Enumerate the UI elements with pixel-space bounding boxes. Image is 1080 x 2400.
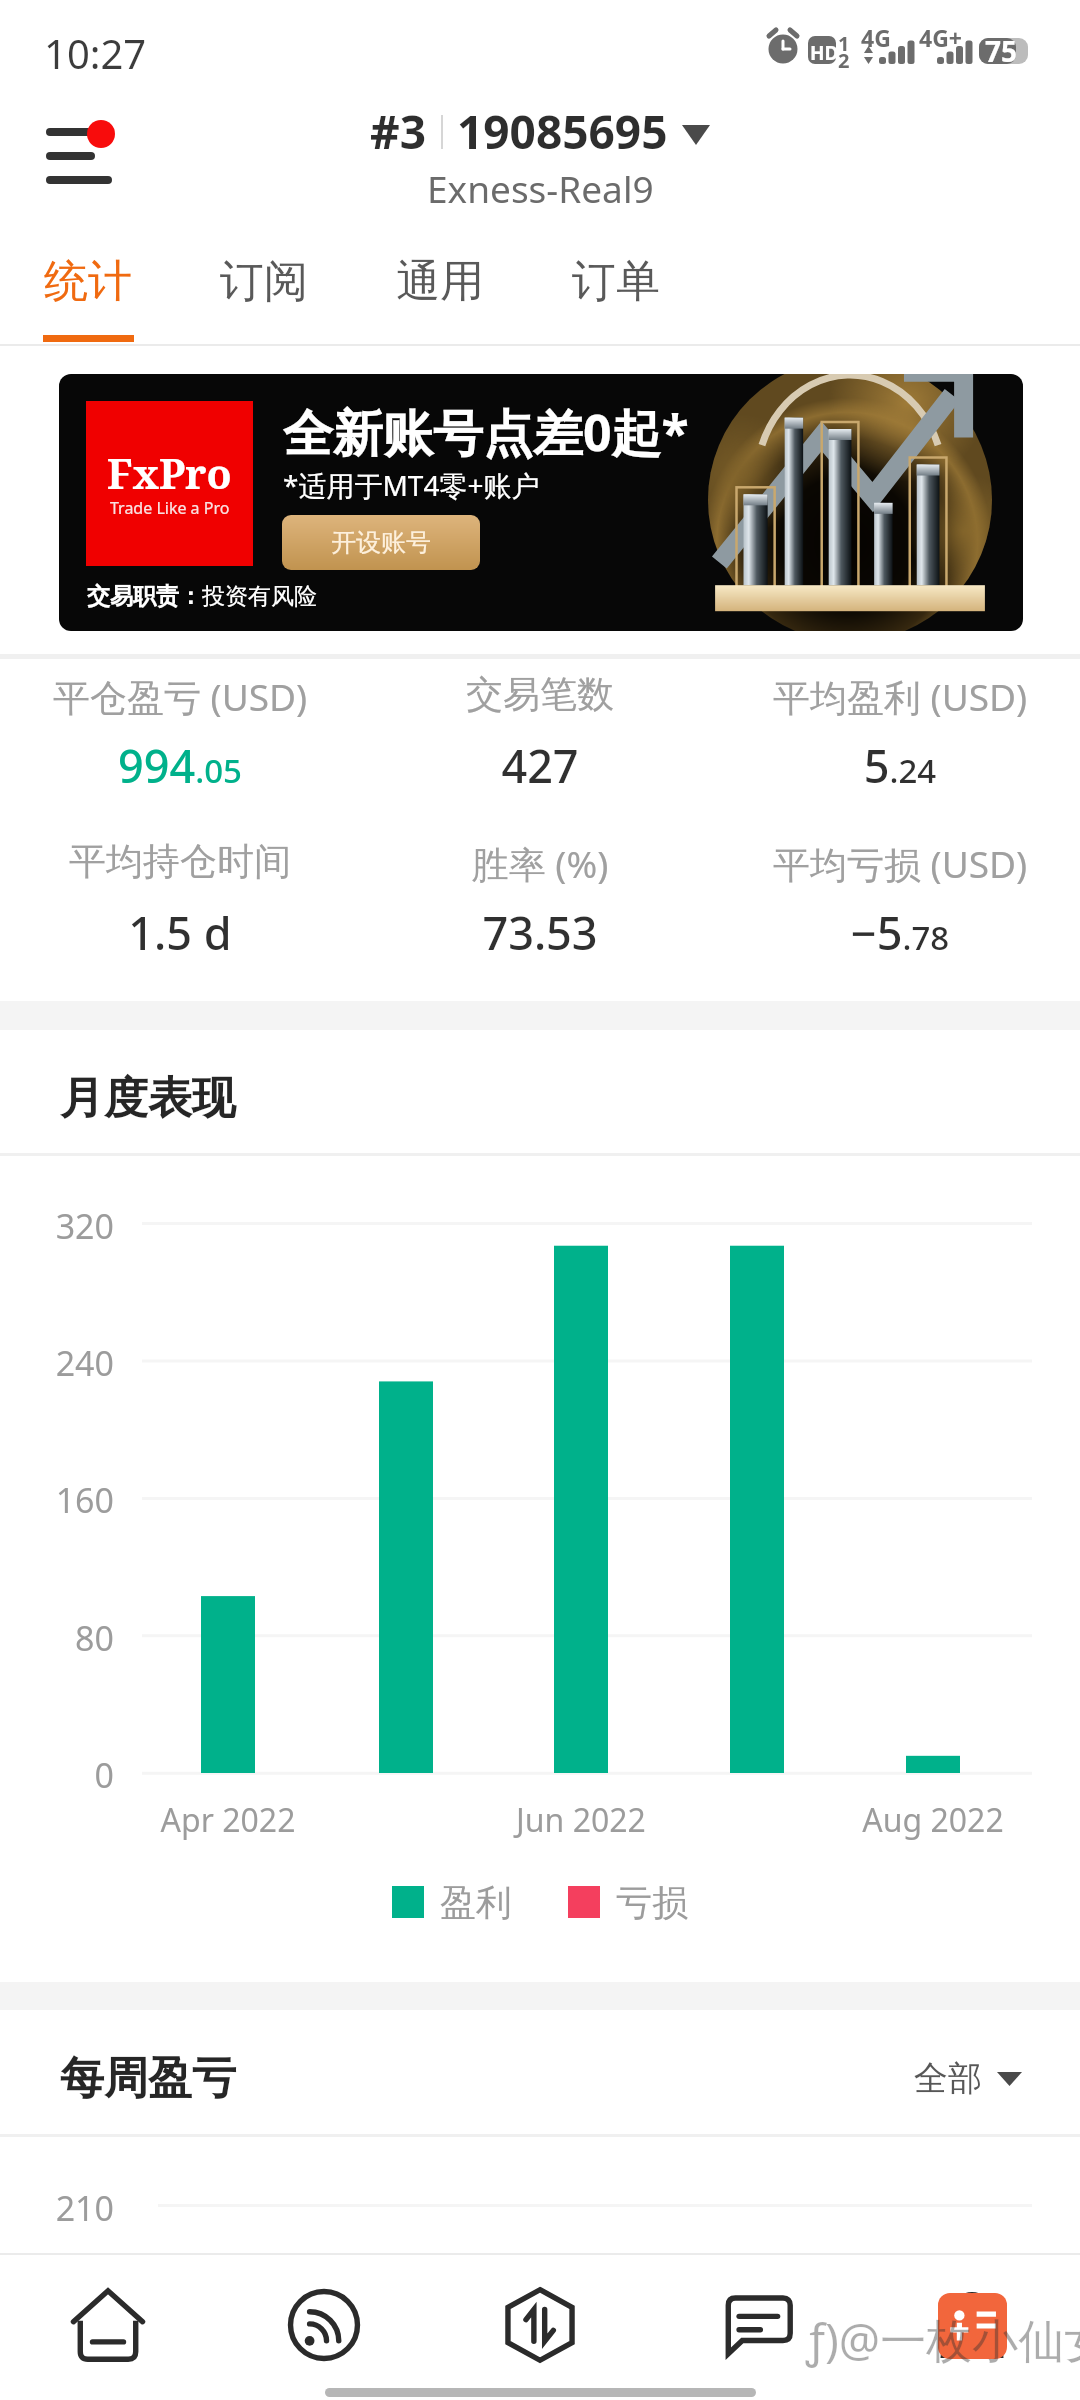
staticText: 胜率 (%) (360, 838, 720, 889)
staticText: 开设账号 (331, 527, 431, 558)
staticText: 4G+ (919, 22, 962, 53)
button[interactable]: Signals (216, 2255, 432, 2390)
button[interactable]: Menu (20, 100, 130, 200)
staticText: 160 (4, 1477, 114, 1523)
button[interactable]: 开设账号 (282, 515, 480, 570)
staticText: 80 (4, 1615, 114, 1661)
staticText: 投资有风险 (202, 582, 317, 611)
staticText: 1 (838, 30, 850, 57)
button[interactable]: Trade (432, 2255, 648, 2390)
staticText: 994.05 (0, 735, 360, 796)
staticText: Jun 2022 (431, 1798, 731, 1842)
staticText: 10:27 (44, 26, 147, 80)
staticText: 统计 (44, 254, 132, 309)
staticText: 订阅 (220, 254, 308, 309)
staticText: Exness-Real9 (427, 163, 654, 213)
staticText: 73.53 (360, 902, 720, 963)
staticText: 5.24 (720, 735, 1080, 796)
staticText: 2 (838, 47, 850, 74)
button[interactable]: FxPro (59, 374, 1023, 631)
staticText: 全新账号点差0起* (283, 398, 689, 466)
staticText: 320 (4, 1203, 114, 1249)
staticText: FxPro (107, 445, 232, 501)
staticText: 427 (360, 735, 720, 796)
button[interactable]: 统计 (0, 240, 176, 352)
button[interactable]: 订阅 (176, 240, 352, 352)
staticText: 交易笔数 (360, 671, 720, 718)
button[interactable]: 全部 (914, 2057, 1022, 2100)
staticText: 240 (4, 1340, 114, 1386)
button[interactable]: 平均亏损 (USD) (720, 838, 1080, 968)
staticText: 订单 (572, 254, 660, 309)
staticText: HD (810, 40, 839, 66)
staticText: #3 (370, 100, 427, 163)
button[interactable]: 通用 (352, 240, 528, 352)
staticText: Aug 2022 (783, 1798, 1080, 1842)
button[interactable]: 胜率 (%) (360, 838, 720, 968)
staticText: 平均持仓时间 (0, 838, 360, 885)
staticText: −5.78 (720, 902, 1080, 963)
staticText: *适用于MT4零+账户 (283, 466, 540, 504)
staticText: 1.5 d (0, 902, 360, 963)
staticText: 亏损 (616, 1880, 688, 1925)
staticText: 210 (4, 2185, 114, 2231)
staticText: 19085695 (457, 100, 668, 163)
button[interactable]: 订单 (528, 240, 704, 352)
button[interactable]: Messages (648, 2255, 864, 2390)
staticText: 75 (985, 32, 1018, 70)
staticText: 平仓盈亏 (USD) (0, 671, 360, 722)
staticText: 每周盈亏 (60, 2051, 236, 2106)
staticText: 4G (861, 22, 891, 53)
button[interactable]: 平均持仓时间 (0, 838, 360, 968)
button[interactable]: 平仓盈亏 (USD) (0, 671, 360, 801)
staticText: ƒ)@一枚小仙女 (806, 2308, 1080, 2371)
button[interactable]: 交易笔数 (360, 671, 720, 801)
staticText: 通用 (396, 254, 484, 309)
button[interactable]: #3 (0, 100, 1080, 220)
staticText: 0 (4, 1752, 114, 1798)
staticText: 盈利 (440, 1880, 512, 1925)
staticText: 平均盈利 (USD) (720, 671, 1080, 722)
staticText: Apr 2022 (78, 1798, 378, 1842)
staticText: 全部 (914, 2057, 982, 2100)
staticText: 平均亏损 (USD) (720, 838, 1080, 889)
staticText: 月度表现 (60, 1071, 236, 1126)
button[interactable]: Home (0, 2255, 216, 2390)
button[interactable]: Profile (864, 2255, 1080, 2390)
staticText: Trade Like a Pro (110, 497, 230, 519)
staticText: 交易职责： (87, 582, 202, 611)
button[interactable]: 平均盈利 (USD) (720, 671, 1080, 801)
